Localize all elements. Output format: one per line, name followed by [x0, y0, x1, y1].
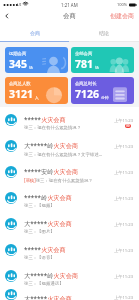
- button[interactable]: 远期会商: [5, 47, 68, 73]
- staticText: UI: [17, 2, 22, 7]
- staticText: 会商总人数: [9, 81, 31, 86]
- staticText: *****安岭火灾会商: [24, 167, 79, 175]
- staticText: 上午11:23: [114, 118, 134, 124]
- button[interactable]: 会商总人数: [5, 77, 68, 104]
- button[interactable]: *****火灾会商: [0, 237, 139, 263]
- staticText: 100%: [117, 2, 128, 7]
- button[interactable]: Back: [0, 9, 14, 23]
- staticText: 张三：【图片】: [24, 229, 55, 235]
- staticText: 7126: [75, 87, 100, 101]
- staticText: 分钟: [101, 95, 109, 100]
- staticText: 上午11:23: [114, 144, 134, 150]
- button[interactable]: 全部会商: [71, 47, 134, 73]
- button[interactable]: 会商: [0, 23, 69, 42]
- staticText: 上午11:23: [114, 295, 134, 300]
- staticText: 创建会商: [110, 12, 134, 20]
- staticText: 上午11:23: [114, 196, 134, 202]
- staticText: 会商总时长: [75, 81, 97, 86]
- staticText: 345: [9, 57, 28, 71]
- staticText: 大*****岭火灾会商: [24, 271, 79, 279]
- button[interactable]: *****火灾会商: [0, 107, 139, 133]
- staticText: 远期会商: [9, 51, 27, 56]
- staticText: 上午11:23: [114, 248, 134, 254]
- staticText: *****火灾会商: [24, 245, 66, 253]
- button[interactable]: 结论: [69, 23, 139, 42]
- staticText: 99: [126, 124, 130, 128]
- staticText: 1:21 AM: [61, 2, 78, 8]
- staticText: 会商: [63, 12, 76, 20]
- staticText: 张三：【视频】: [24, 203, 55, 209]
- staticText: 张三：【语音】: [24, 255, 55, 261]
- staticText: 张三：【视频通话】: [24, 281, 64, 287]
- staticText: 大*****火灾会商: [24, 219, 72, 227]
- button[interactable]: 大*****岭火灾会商: [0, 133, 139, 159]
- staticText: 3121: [9, 87, 34, 101]
- staticText: 781: [75, 57, 94, 71]
- staticText: 张三：现在有什么紧急情况？: [24, 125, 82, 131]
- button[interactable]: *****安岭火灾会商: [0, 159, 139, 185]
- staticText: 张三：现在有什么紧急情况？文字描述...: [24, 151, 103, 157]
- staticText: *****火灾会商: [24, 115, 66, 123]
- staticText: 场: [29, 65, 33, 70]
- staticText: 全部会商: [75, 51, 93, 56]
- staticText: [草稿]张三：现在有什么紧急情况？: [24, 177, 93, 183]
- staticText: 结论: [99, 30, 109, 36]
- staticText: 上午11:23: [114, 274, 134, 280]
- staticText: 大*****火灾会商: [24, 294, 72, 300]
- staticText: *****岭火灾会商: [24, 193, 72, 201]
- button[interactable]: 大*****火灾会商: [0, 211, 139, 237]
- staticText: 会商: [30, 30, 40, 36]
- button[interactable]: 大*****岭火灾会商: [0, 263, 139, 289]
- button[interactable]: 会商总时长: [71, 77, 134, 104]
- staticText: 上午11:23: [114, 170, 134, 176]
- button[interactable]: 大*****火灾会商: [0, 289, 139, 300]
- staticText: 人: [35, 95, 39, 100]
- button[interactable]: *****岭火灾会商: [0, 185, 139, 211]
- staticText: 上午11:23: [114, 222, 134, 228]
- staticText: 大*****岭火灾会商: [24, 141, 79, 149]
- button[interactable]: 创建会商: [106, 9, 139, 23]
- staticText: 场: [95, 65, 99, 70]
